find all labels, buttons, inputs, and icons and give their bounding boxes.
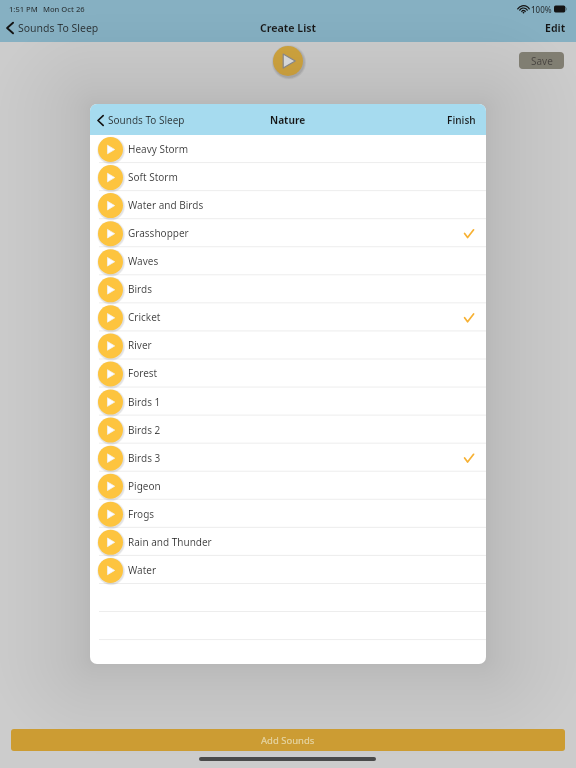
- staticText: Mon Oct 26: [43, 4, 85, 14]
- other: Play: [97, 501, 124, 528]
- staticText: 1:51 PM: [9, 4, 38, 14]
- other: Play: [97, 360, 124, 387]
- staticText: Create List: [260, 21, 317, 35]
- staticText: Birds: [128, 282, 152, 296]
- other: Play: [97, 445, 124, 472]
- button[interactable]: Finish: [439, 109, 486, 131]
- other: Play: [97, 164, 124, 191]
- button[interactable]: Play: [90, 163, 486, 191]
- button[interactable]: Play: [90, 472, 486, 500]
- button[interactable]: Play: [90, 275, 486, 303]
- button[interactable]: Sounds To Sleep: [90, 109, 191, 131]
- button[interactable]: Add Sounds: [11, 729, 565, 751]
- other: Play: [97, 276, 124, 303]
- staticText: Add Sounds: [261, 734, 315, 747]
- staticText: Heavy Storm: [128, 142, 189, 156]
- staticText: Sounds To Sleep: [108, 113, 185, 127]
- staticText: Soft Storm: [128, 170, 178, 184]
- other: Play: [97, 136, 124, 163]
- staticText: River: [128, 338, 152, 352]
- other: Play: [97, 220, 124, 247]
- other: Play: [97, 529, 124, 556]
- other: Play: [97, 388, 124, 415]
- button[interactable]: Edit: [537, 18, 576, 38]
- button[interactable]: Play: [90, 331, 486, 359]
- staticText: 100%: [531, 4, 552, 15]
- button[interactable]: Play: [90, 416, 486, 444]
- button[interactable]: Play: [90, 387, 486, 415]
- other: Play: [97, 304, 124, 331]
- other: Play: [97, 473, 124, 500]
- staticText: Water: [128, 563, 157, 577]
- staticText: Frogs: [128, 507, 155, 521]
- other: Play: [97, 192, 124, 219]
- button[interactable]: Play: [90, 303, 486, 331]
- other: Play: [97, 417, 124, 444]
- other: Play: [97, 332, 124, 359]
- staticText: Pigeon: [128, 479, 161, 493]
- other: Play: [97, 248, 124, 275]
- button[interactable]: Play: [90, 191, 486, 219]
- staticText: Water and Birds: [128, 198, 204, 212]
- staticText: Birds 1: [128, 394, 161, 408]
- staticText: Cricket: [128, 310, 161, 324]
- other: Play: [97, 557, 124, 584]
- staticText: Save: [531, 54, 553, 68]
- button[interactable]: Play: [90, 500, 486, 528]
- staticText: Forest: [128, 366, 158, 380]
- staticText: Grasshopper: [128, 226, 189, 240]
- staticText: Rain and Thunder: [128, 535, 212, 549]
- button[interactable]: Play: [90, 359, 486, 387]
- button[interactable]: Play: [90, 556, 486, 584]
- button[interactable]: Play: [90, 247, 486, 275]
- staticText: Waves: [128, 254, 159, 268]
- button[interactable]: Play: [90, 219, 486, 247]
- staticText: Birds 2: [128, 423, 161, 437]
- button[interactable]: Play: [270, 43, 306, 79]
- staticText: Nature: [270, 113, 306, 127]
- button[interactable]: Play: [90, 444, 486, 472]
- staticText: Sounds To Sleep: [18, 21, 99, 35]
- button[interactable]: Play: [90, 135, 486, 163]
- button[interactable]: Save: [519, 52, 564, 69]
- button[interactable]: Play: [90, 528, 486, 556]
- staticText: Birds 3: [128, 451, 161, 465]
- button[interactable]: Sounds To Sleep: [0, 18, 105, 38]
